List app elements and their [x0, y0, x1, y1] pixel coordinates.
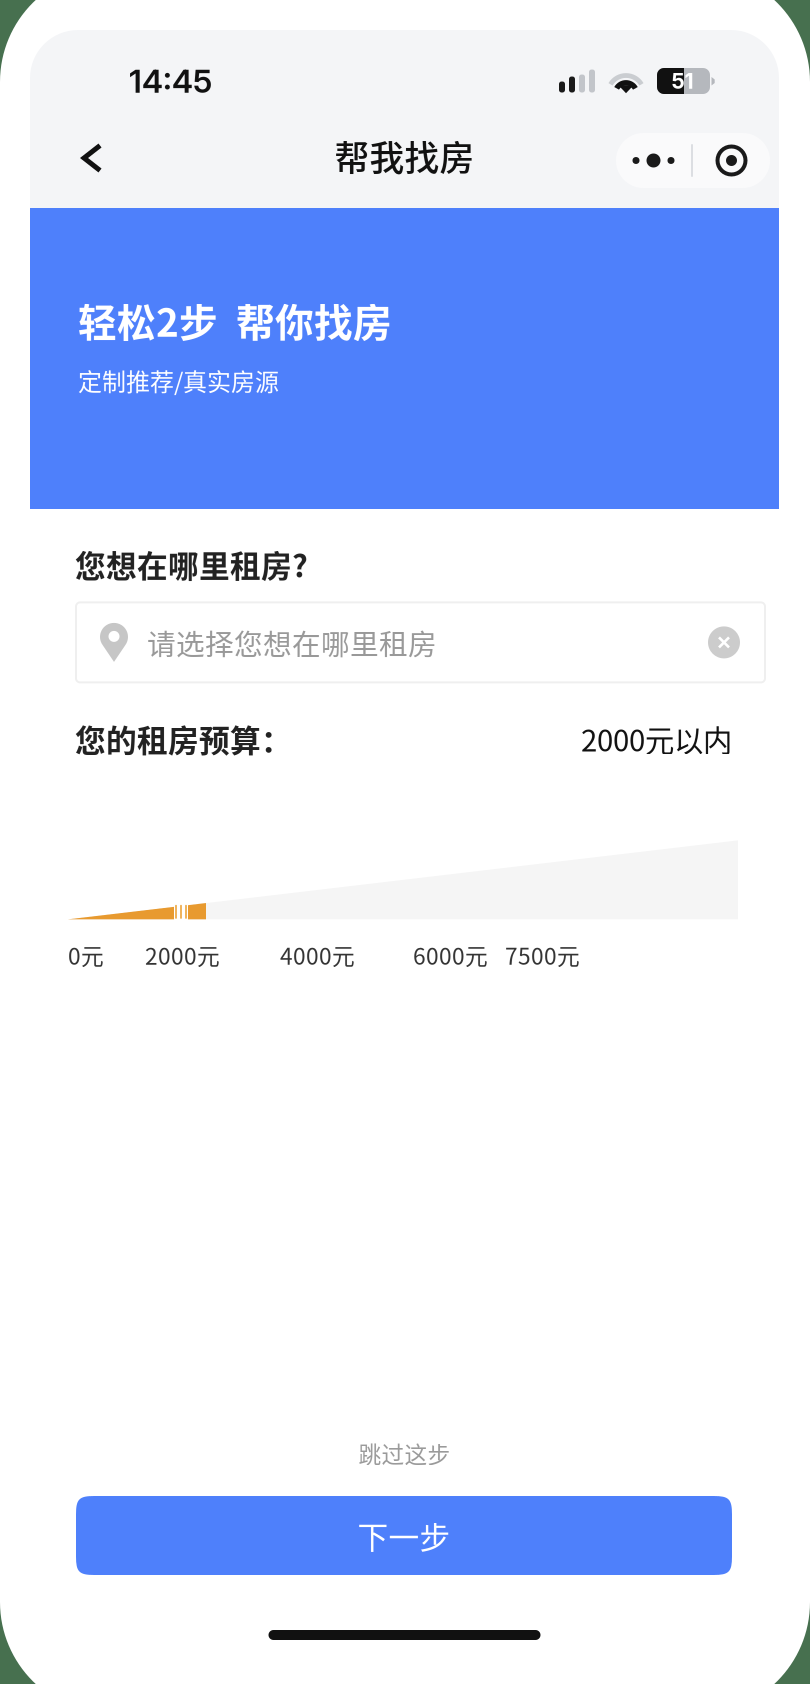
staticText: 您的租房预算：: [75, 716, 292, 761]
staticText: 下一步: [357, 1513, 450, 1558]
button[interactable]: 更多: [616, 124, 770, 188]
button[interactable]: 返回: [50, 120, 127, 192]
staticText: 定制推荐/真实房源: [78, 363, 279, 398]
staticText: 轻松2步 帮你找房: [78, 292, 392, 348]
staticText: 跳过这步: [358, 1437, 450, 1469]
staticText: 2000元: [145, 938, 220, 971]
staticText: 2000元以内: [581, 717, 732, 760]
staticText: 帮我找房: [334, 131, 474, 181]
staticText: 您想在哪里租房?: [75, 542, 308, 586]
button[interactable]: 请选择您想在哪里租房: [76, 602, 765, 682]
staticText: 6000元: [413, 938, 488, 971]
button[interactable]: 下一步: [76, 1496, 732, 1575]
button[interactable]: 跳过这步: [30, 1431, 779, 1475]
staticText: 7500元: [505, 938, 580, 971]
staticText: 0元: [68, 938, 104, 971]
staticText: 51: [671, 68, 693, 94]
staticText: 请选择您想在哪里租房: [147, 622, 437, 663]
staticText: 4000元: [280, 938, 355, 971]
staticText: 14:45: [129, 62, 212, 100]
